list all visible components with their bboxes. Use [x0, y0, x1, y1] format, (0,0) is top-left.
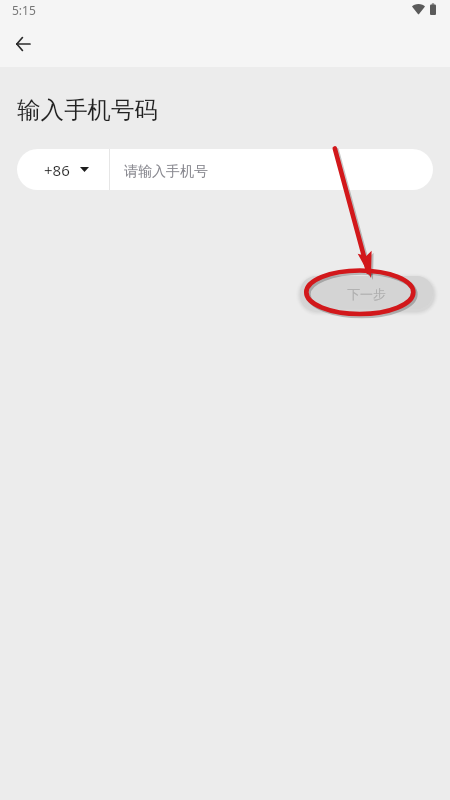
staticText: +86 — [44, 160, 70, 180]
button[interactable]: Back — [5, 26, 41, 62]
staticText: 输入手机号码 — [17, 95, 158, 125]
staticText: 请输入手机号 — [124, 163, 208, 181]
staticText: 5:15 — [12, 2, 36, 18]
button[interactable]: 请输入手机号 — [110, 149, 433, 190]
button[interactable]: +86 — [17, 149, 109, 190]
staticText: 下一步 — [347, 286, 386, 302]
button[interactable]: 下一步 — [300, 276, 433, 309]
